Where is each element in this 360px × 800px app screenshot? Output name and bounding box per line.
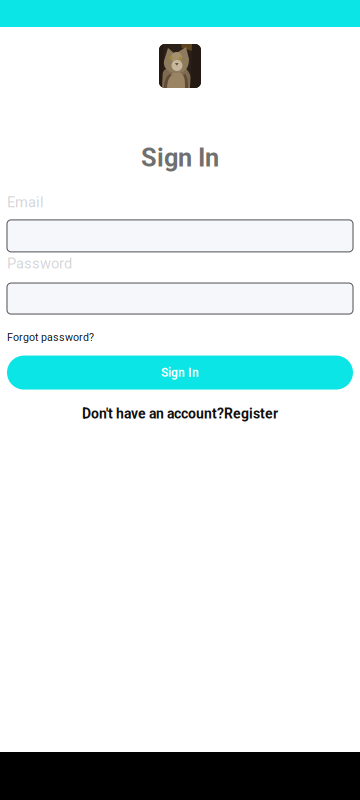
staticText: Email bbox=[7, 194, 44, 211]
button[interactable]: Password bbox=[7, 283, 353, 314]
staticText: Forgot password? bbox=[7, 331, 94, 344]
staticText: Sign In bbox=[141, 143, 219, 173]
button[interactable]: Sign In bbox=[7, 356, 353, 390]
staticText: Password bbox=[7, 255, 72, 272]
staticText: Don't have an account?Register bbox=[82, 406, 278, 422]
button[interactable]: Forgot password? bbox=[7, 331, 94, 344]
button[interactable]: Don't have an account?Register bbox=[7, 406, 353, 422]
staticText: Sign In bbox=[161, 365, 199, 380]
button[interactable]: Email bbox=[7, 220, 353, 252]
